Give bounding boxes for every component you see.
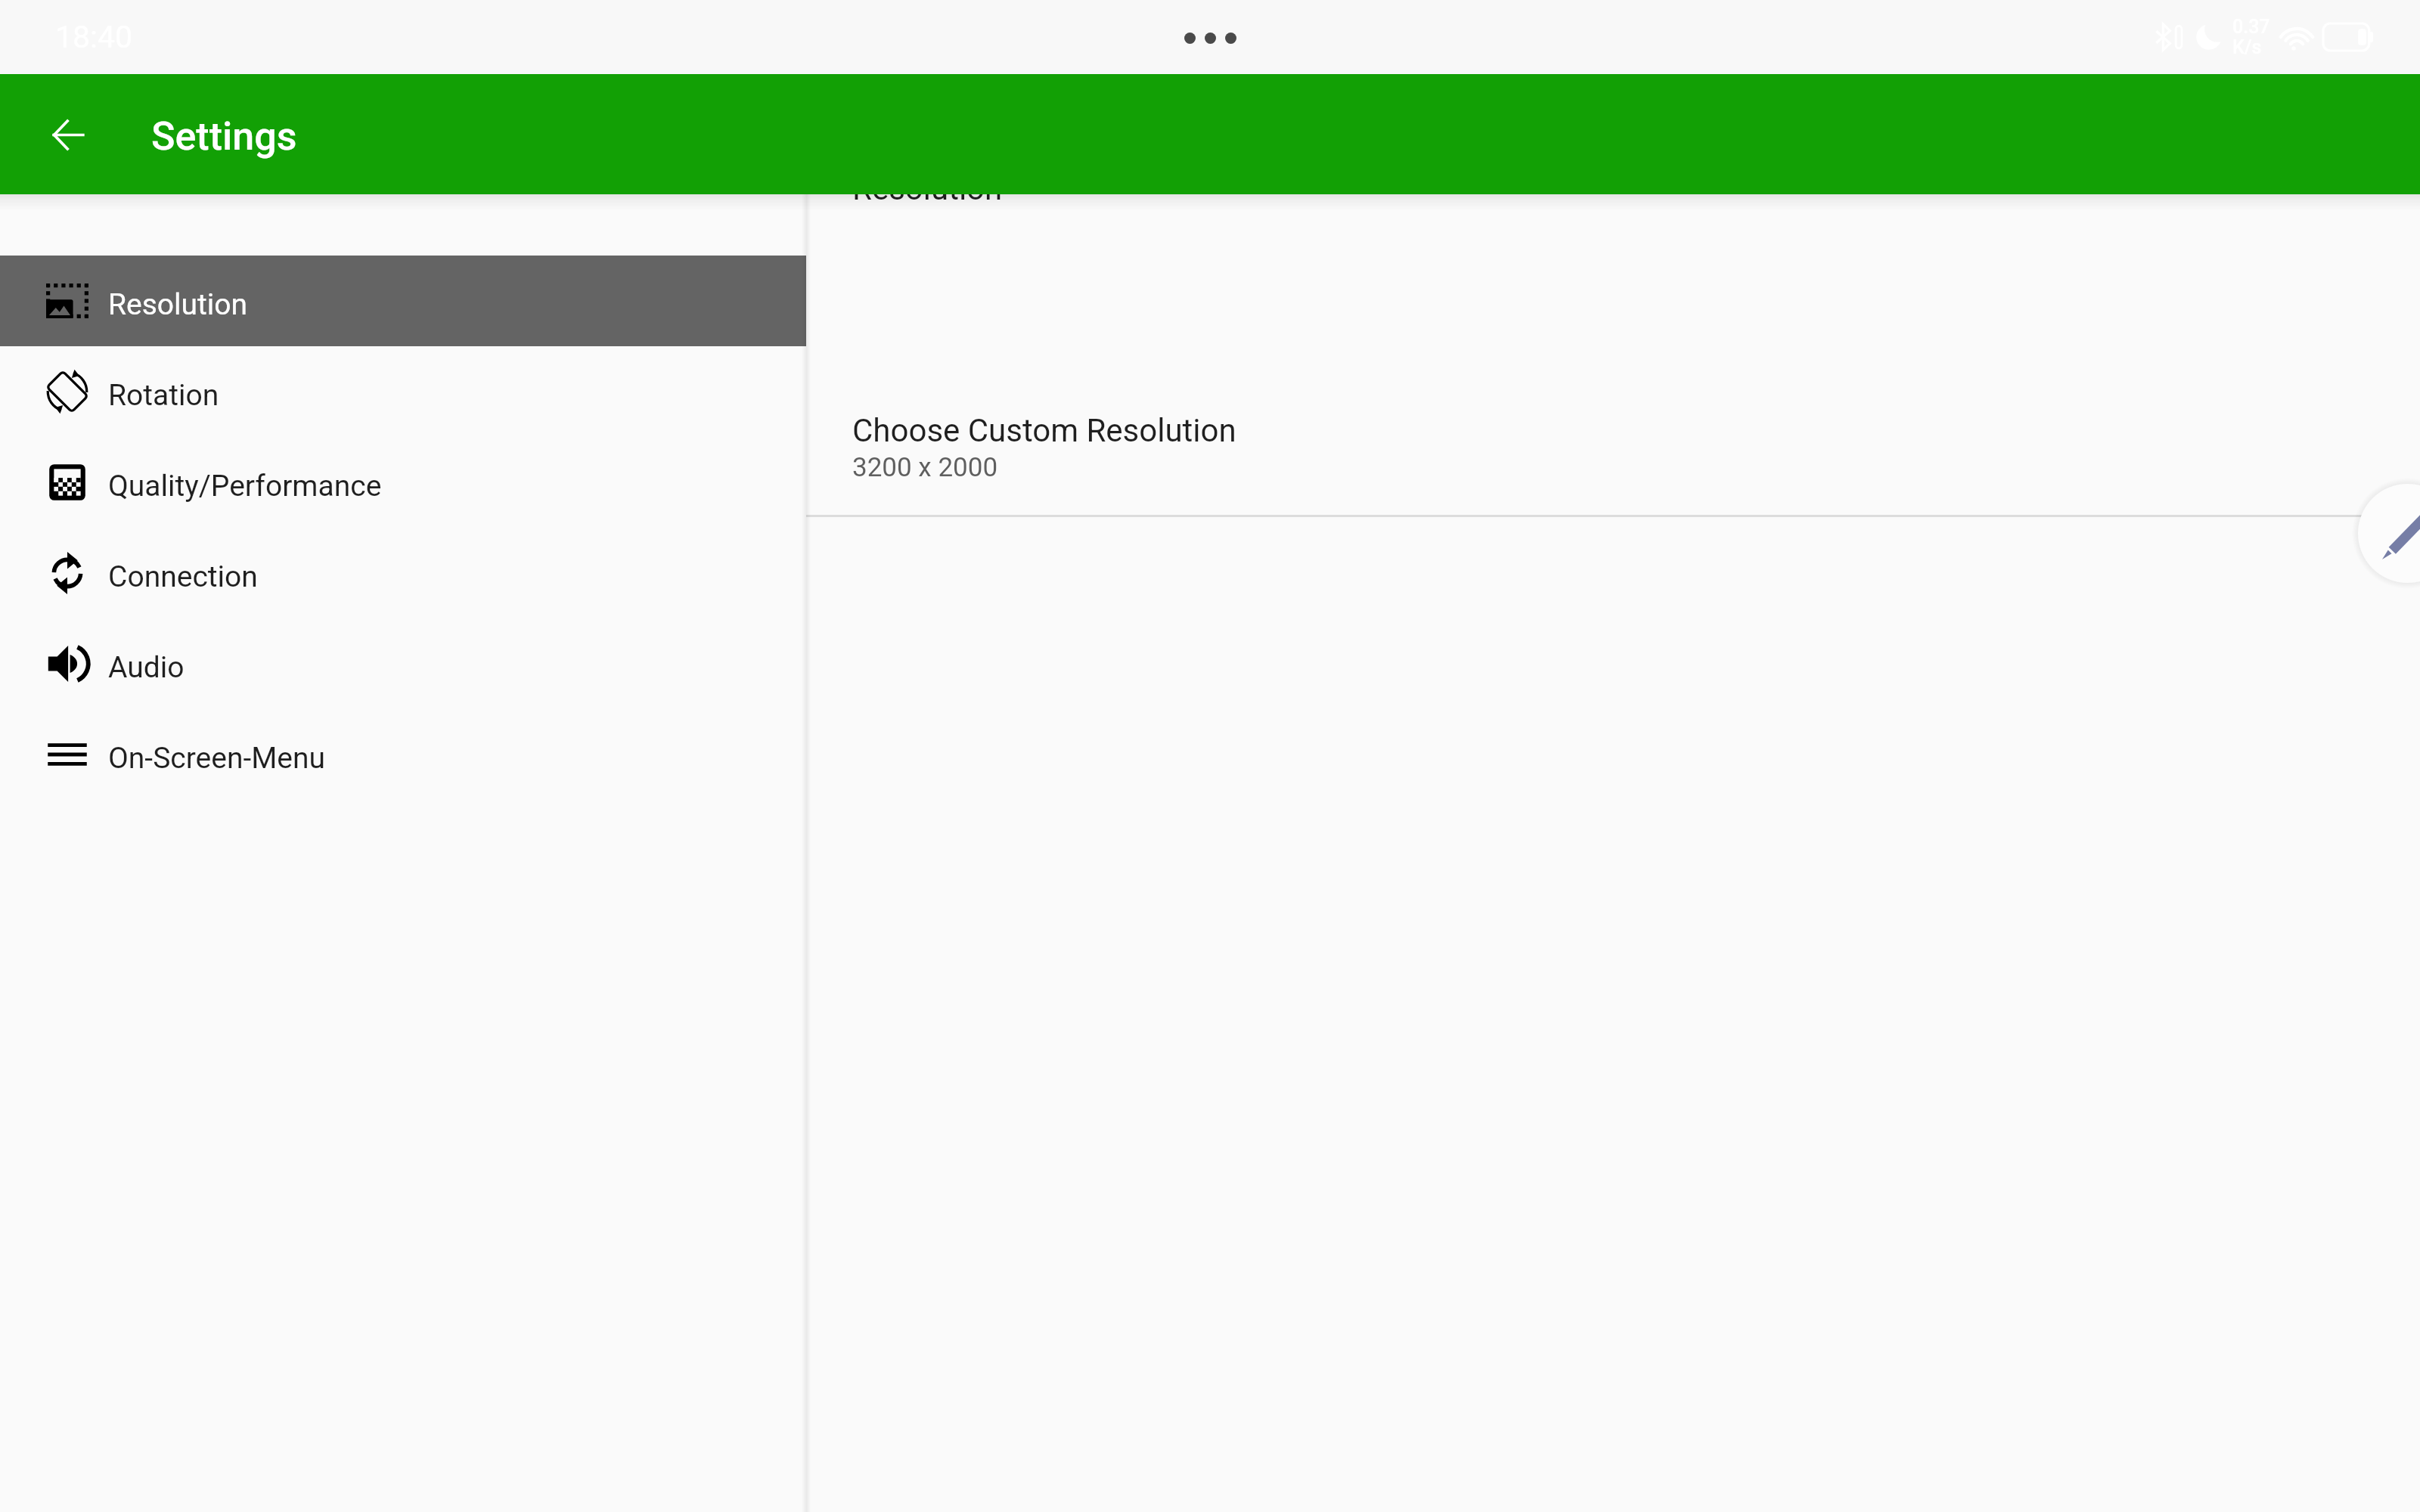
button[interactable]: Choose Custom Resolution — [806, 374, 2420, 515]
staticText: On-Screen-Menu — [108, 741, 326, 776]
staticText: Rotation — [108, 378, 219, 413]
button[interactable]: On-Screen-Menu — [0, 709, 806, 800]
staticText: Resolution — [852, 170, 1003, 207]
button[interactable]: Edit — [2358, 484, 2420, 583]
staticText: 3200 x 2000 — [852, 452, 998, 483]
staticText: Quality/Performance — [108, 469, 382, 503]
button[interactable]: Resolution — [0, 256, 806, 346]
button[interactable]: Connection — [0, 528, 806, 618]
staticText: Connection — [108, 559, 258, 594]
button[interactable]: Rotation — [0, 346, 806, 437]
button[interactable]: Audio — [0, 618, 806, 709]
button[interactable]: Quality/Performance — [0, 437, 806, 528]
staticText: Resolution — [108, 287, 248, 322]
staticText: Choose Custom Resolution — [852, 412, 1236, 449]
staticText: Settings — [151, 113, 297, 160]
staticText: Audio — [108, 650, 185, 685]
button[interactable]: Back — [30, 97, 106, 172]
